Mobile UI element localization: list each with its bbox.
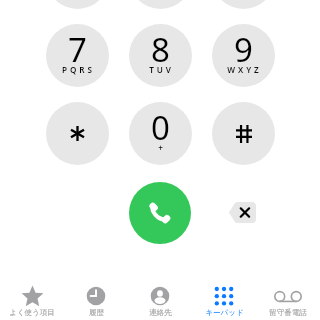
staticText: 9 — [234, 27, 253, 72]
button[interactable] — [46, 102, 109, 165]
staticText: 留守番電話 — [269, 308, 307, 317]
staticText: よく使う項目 — [9, 308, 55, 317]
button[interactable]: 0 — [129, 102, 192, 165]
button[interactable]: 留守番電話 — [256, 280, 320, 317]
button[interactable]: 4 — [46, 0, 109, 9]
button[interactable]: Call — [129, 182, 191, 244]
staticText: PQRS — [62, 64, 95, 75]
button[interactable]: 7 — [46, 24, 109, 87]
staticText: 7 — [68, 27, 87, 72]
staticText: TUV — [149, 64, 174, 75]
button[interactable]: 連絡先 — [128, 280, 192, 317]
staticText: WXYZ — [227, 64, 262, 75]
staticText: 連絡先 — [149, 308, 172, 317]
button[interactable]: よく使う項目 — [0, 280, 64, 317]
staticText: 履歴 — [89, 308, 104, 317]
button[interactable]: 履歴 — [64, 280, 128, 317]
button[interactable]: キーパッド — [192, 280, 256, 317]
staticText: 8 — [151, 27, 170, 72]
button[interactable]: 6 — [212, 0, 275, 9]
staticText: キーパッド — [205, 308, 244, 317]
staticText: 0 — [151, 105, 170, 150]
staticText: + — [158, 142, 166, 153]
button[interactable]: 8 — [129, 24, 192, 87]
button[interactable] — [212, 102, 275, 165]
button[interactable]: 9 — [212, 24, 275, 87]
button[interactable]: Delete — [222, 196, 262, 229]
button[interactable]: 5 — [129, 0, 192, 9]
